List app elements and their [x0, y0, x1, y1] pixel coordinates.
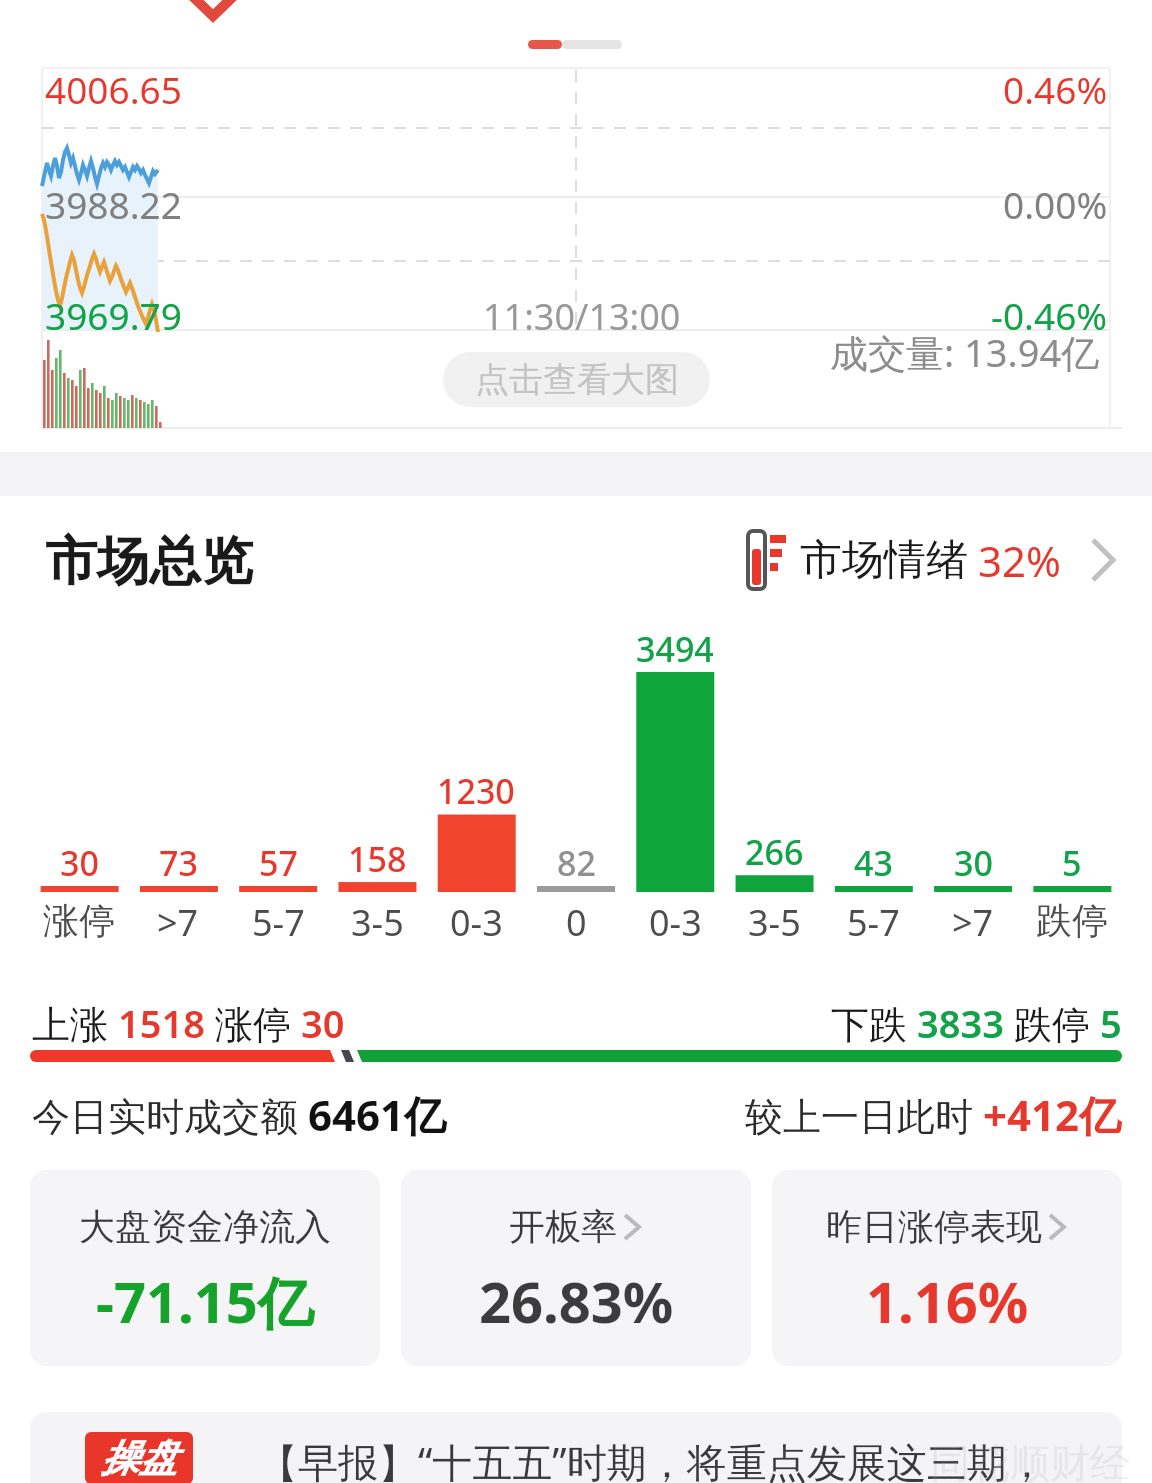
staticText: 26.83%	[479, 1263, 674, 1339]
staticText: 操盘	[101, 1434, 177, 1482]
button[interactable]: 昨日涨停表现	[772, 1170, 1122, 1366]
staticText: 5	[1100, 997, 1122, 1049]
staticText: 涨停	[205, 997, 301, 1049]
staticText: 0.46%	[1003, 64, 1108, 114]
staticText: 4006.65	[45, 64, 182, 114]
staticText: 30	[954, 840, 993, 886]
staticText: 3988.22	[45, 179, 182, 229]
staticText: 3-5	[351, 898, 404, 947]
staticText: 下跌	[831, 997, 917, 1049]
staticText: 30	[301, 997, 345, 1049]
button[interactable]: 开板率	[401, 1170, 751, 1366]
staticText: 43	[854, 840, 893, 886]
staticText: 0-3	[649, 898, 702, 947]
staticText: >7	[952, 898, 994, 947]
staticText: 大盘资金净流入	[79, 1204, 331, 1249]
staticText: 5-7	[847, 898, 900, 947]
staticText: 6461亿	[308, 1086, 447, 1143]
staticText: 1518	[118, 997, 205, 1049]
staticText: 5-7	[252, 898, 305, 947]
staticText: 11:30/13:00	[483, 292, 681, 341]
staticText: 0	[566, 898, 587, 947]
staticText: 今日实时成交额	[32, 1089, 308, 1141]
staticText: 3494	[636, 626, 714, 672]
staticText: 同花顺财经	[930, 1438, 1130, 1483]
staticText: 点击查看大图	[475, 358, 679, 401]
staticText: 30	[60, 840, 99, 886]
staticText: 涨停	[43, 898, 115, 943]
staticText: 市场总览	[45, 529, 253, 595]
staticText: 158	[348, 836, 407, 882]
staticText: 跌停	[1004, 997, 1100, 1049]
staticText: 32%	[978, 532, 1061, 589]
staticText: 较上一日此时	[745, 1089, 983, 1141]
button[interactable]: 市场情绪	[740, 528, 1119, 592]
staticText: 1230	[437, 768, 515, 814]
staticText: 5	[1062, 840, 1082, 886]
staticText: 市场情绪	[800, 534, 968, 587]
staticText: 3-5	[748, 898, 801, 947]
button[interactable]: 点击查看大图	[443, 352, 710, 407]
staticText: 82	[557, 840, 596, 886]
button[interactable]: 大盘资金净流入	[30, 1170, 380, 1366]
staticText: 0-3	[450, 898, 503, 947]
staticText: -71.15亿	[96, 1263, 314, 1339]
staticText: 昨日涨停表现	[826, 1204, 1042, 1249]
button[interactable]: 操盘	[30, 1412, 1122, 1483]
staticText: 跌停	[1036, 898, 1108, 943]
staticText: 73	[159, 840, 198, 886]
staticText: 上涨	[32, 997, 118, 1049]
staticText: 57	[259, 840, 298, 886]
staticText: 开板率	[509, 1204, 617, 1249]
staticText: 成交量: 13.94亿	[830, 326, 1100, 378]
staticText: 3833	[917, 997, 1004, 1049]
staticText: >7	[157, 898, 199, 947]
staticText: 266	[745, 829, 804, 875]
staticText: 0.00%	[1003, 179, 1108, 229]
staticText: -0.46%	[991, 290, 1108, 340]
staticText: 3969.79	[45, 290, 182, 340]
staticText: +412亿	[983, 1086, 1122, 1143]
staticText: 【早报】“十五五”时期，将重点发展这三期，	[258, 1434, 1047, 1483]
staticText: 1.16%	[866, 1263, 1029, 1339]
